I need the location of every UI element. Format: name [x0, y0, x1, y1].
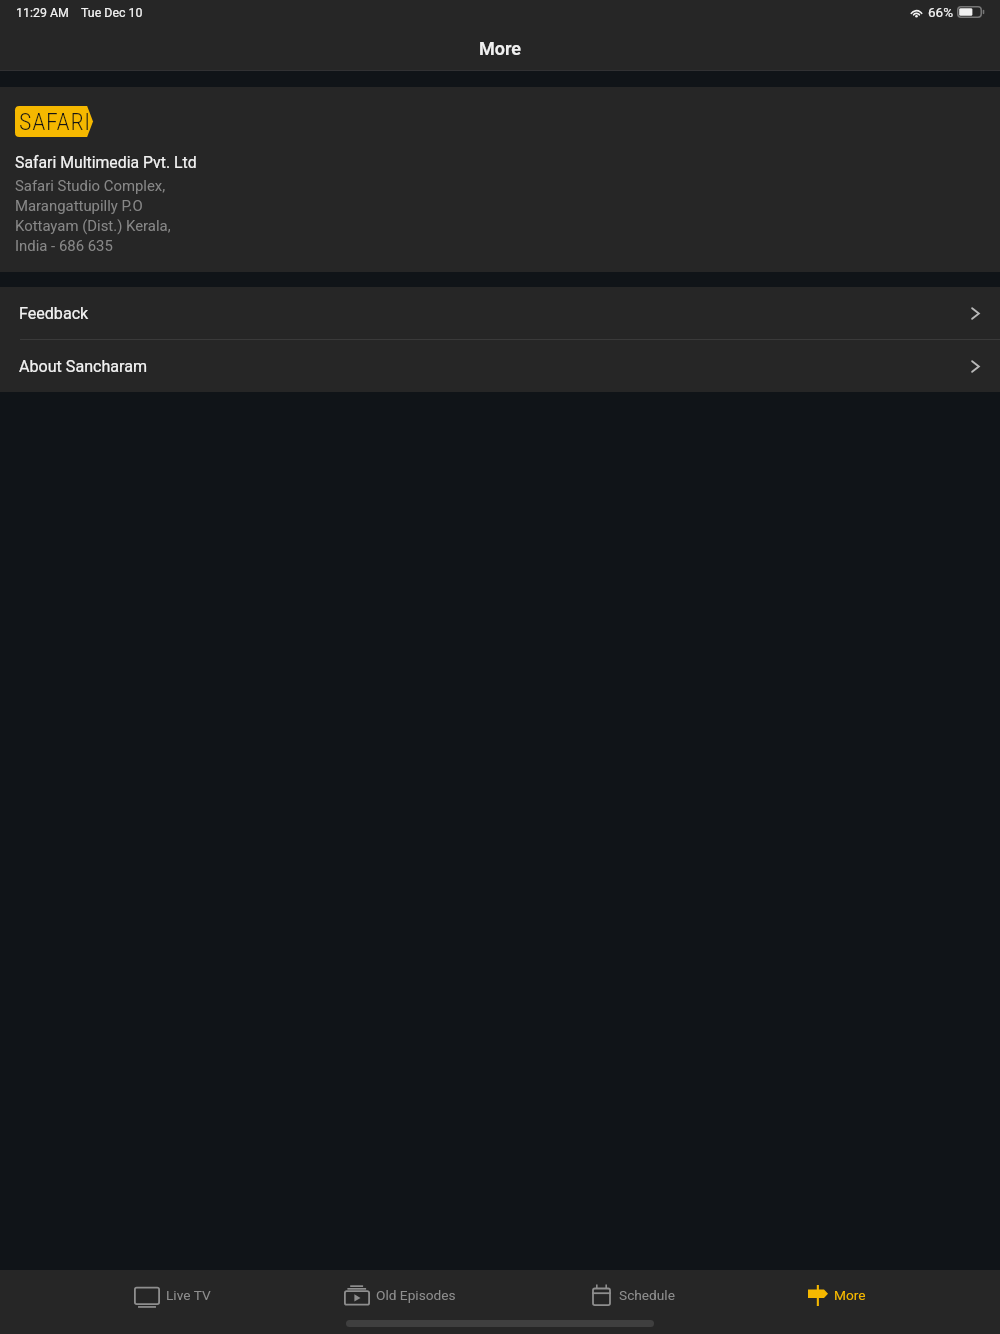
staticText: Schedule [619, 1287, 675, 1303]
other: More [808, 1284, 828, 1306]
button[interactable]: Old Episodes [344, 1270, 456, 1320]
staticText: More [834, 1287, 866, 1303]
staticText: Live TV [166, 1287, 211, 1303]
staticText: SAFARI [19, 108, 91, 136]
staticText: Safari Multimedia Pvt. Ltd [15, 153, 197, 172]
button[interactable]: Schedule [590, 1270, 675, 1320]
button[interactable]: More [808, 1270, 866, 1320]
staticText: More [479, 38, 521, 59]
staticText: About Sancharam [19, 357, 148, 376]
staticText: 11:29 AM [16, 5, 69, 20]
button[interactable]: Live TV [134, 1270, 211, 1320]
staticText: 66% [928, 4, 954, 20]
staticText: Safari Studio Complex, Marangattupilly P… [15, 177, 171, 254]
button[interactable]: About Sancharam [0, 340, 1000, 392]
staticText: Feedback [19, 304, 89, 323]
button[interactable]: Feedback [0, 287, 1000, 339]
staticText: Old Episodes [376, 1287, 456, 1303]
staticText: Tue Dec 10 [81, 5, 143, 20]
